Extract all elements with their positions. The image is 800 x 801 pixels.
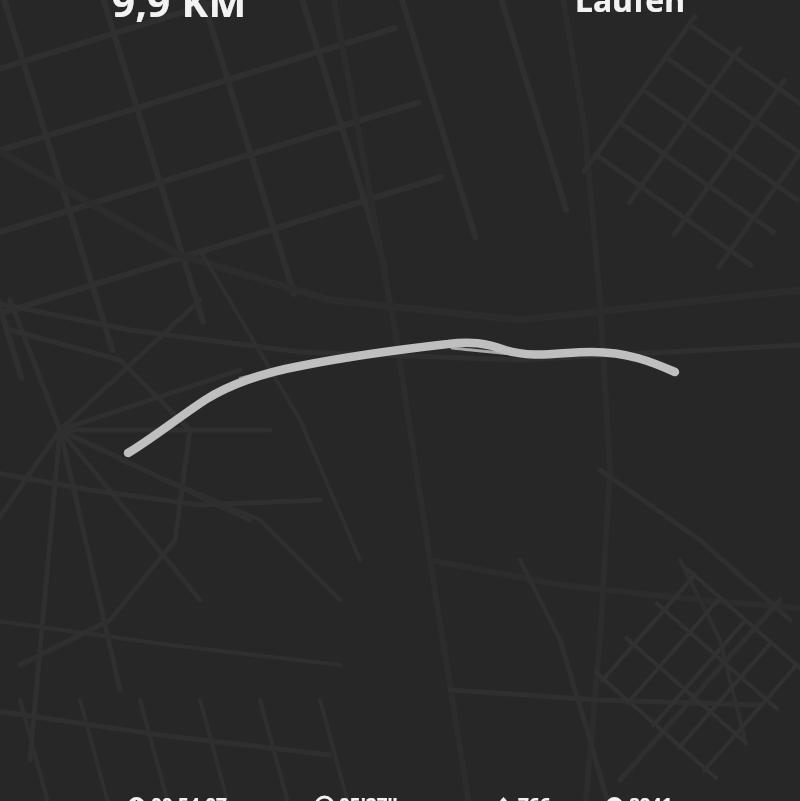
button[interactable]: Laufen bbox=[575, 0, 686, 22]
staticText: 00:54:07 bbox=[151, 792, 227, 801]
button[interactable]: Calories bbox=[495, 792, 551, 801]
button[interactable]: Steps bbox=[606, 792, 673, 801]
staticText: 05'27'' bbox=[339, 792, 398, 801]
button[interactable]: Pace bbox=[316, 792, 398, 801]
button[interactable]: 9,9 KM bbox=[112, 0, 247, 28]
staticText: 8941 bbox=[629, 792, 673, 801]
staticText: 766 bbox=[518, 792, 551, 801]
button[interactable]: Time bbox=[128, 792, 227, 801]
